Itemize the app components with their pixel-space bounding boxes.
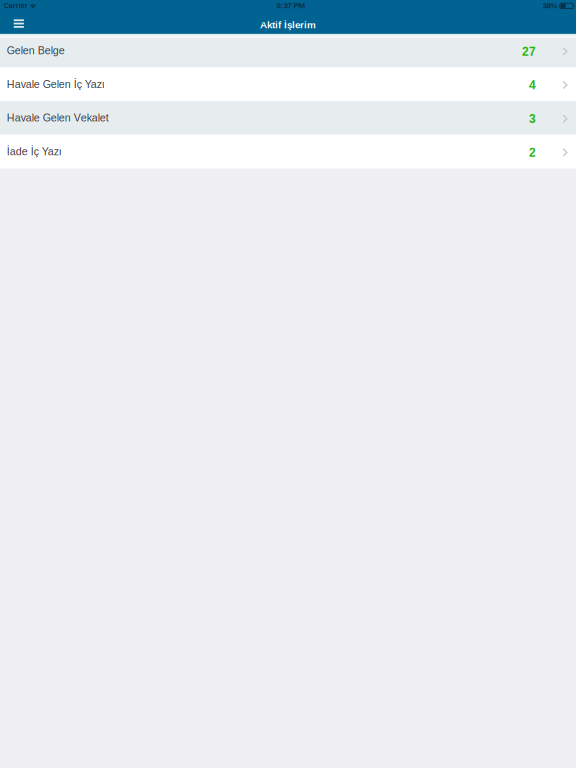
staticText: Havale Gelen İç Yazı bbox=[7, 78, 105, 90]
staticText: 4 bbox=[529, 78, 536, 92]
staticText: Aktif İşlerim bbox=[260, 19, 316, 30]
staticText: Gelen Belge bbox=[7, 45, 65, 56]
staticText: Carrier bbox=[4, 2, 28, 10]
button[interactable]: Havale Gelen İç Yazı bbox=[0, 67, 576, 101]
staticText: 3 bbox=[529, 112, 536, 126]
button[interactable]: Menu bbox=[7, 19, 31, 28]
staticText: 2 bbox=[529, 146, 536, 159]
button[interactable]: İade İç Yazı bbox=[0, 135, 576, 168]
button[interactable]: Havale Gelen Vekalet bbox=[0, 101, 576, 135]
staticText: 8:37 PM bbox=[276, 1, 305, 10]
button[interactable]: Gelen Belge bbox=[0, 34, 576, 67]
staticText: İade İç Yazı bbox=[7, 146, 62, 157]
staticText: 27 bbox=[522, 45, 536, 58]
staticText: 38% bbox=[542, 1, 557, 10]
staticText: Havale Gelen Vekalet bbox=[7, 112, 109, 124]
